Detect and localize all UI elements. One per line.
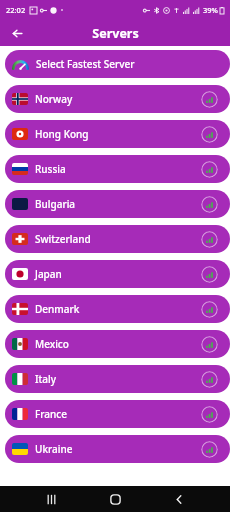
button[interactable]: Russia <box>5 155 230 183</box>
staticText: Select Fastest Server <box>36 57 135 71</box>
staticText: Norway <box>35 92 73 106</box>
button[interactable]: Ukraine <box>5 435 230 463</box>
button[interactable]: Denmark <box>5 295 230 323</box>
staticText: Servers <box>92 25 139 42</box>
staticText: Denmark <box>35 302 80 316</box>
staticText: Mexico <box>35 337 69 351</box>
button[interactable]: Norway <box>5 85 230 113</box>
staticText: Switzerland <box>35 232 91 246</box>
staticText: Italy <box>35 372 57 386</box>
button[interactable]: Japan <box>5 260 230 288</box>
button[interactable]: France <box>5 400 230 428</box>
button[interactable]: Back <box>166 486 192 512</box>
button[interactable]: Mexico <box>5 330 230 358</box>
staticText: 22:02 <box>6 5 26 15</box>
staticText: France <box>35 407 67 421</box>
staticText: 39% <box>203 5 218 15</box>
button[interactable]: Switzerland <box>5 225 230 253</box>
button[interactable]: Select Fastest Server <box>5 50 230 78</box>
button[interactable]: Recents <box>38 486 64 512</box>
staticText: Russia <box>35 162 66 176</box>
staticText: Hong Kong <box>35 127 89 141</box>
button[interactable]: Hong Kong <box>5 120 230 148</box>
staticText: Bulgaria <box>35 197 76 211</box>
staticText: Ukraine <box>35 442 73 456</box>
button[interactable]: Bulgaria <box>5 190 230 218</box>
button[interactable]: Home <box>102 486 128 512</box>
staticText: Japan <box>35 267 62 281</box>
button[interactable]: Back <box>8 24 26 42</box>
button[interactable]: Italy <box>5 365 230 393</box>
